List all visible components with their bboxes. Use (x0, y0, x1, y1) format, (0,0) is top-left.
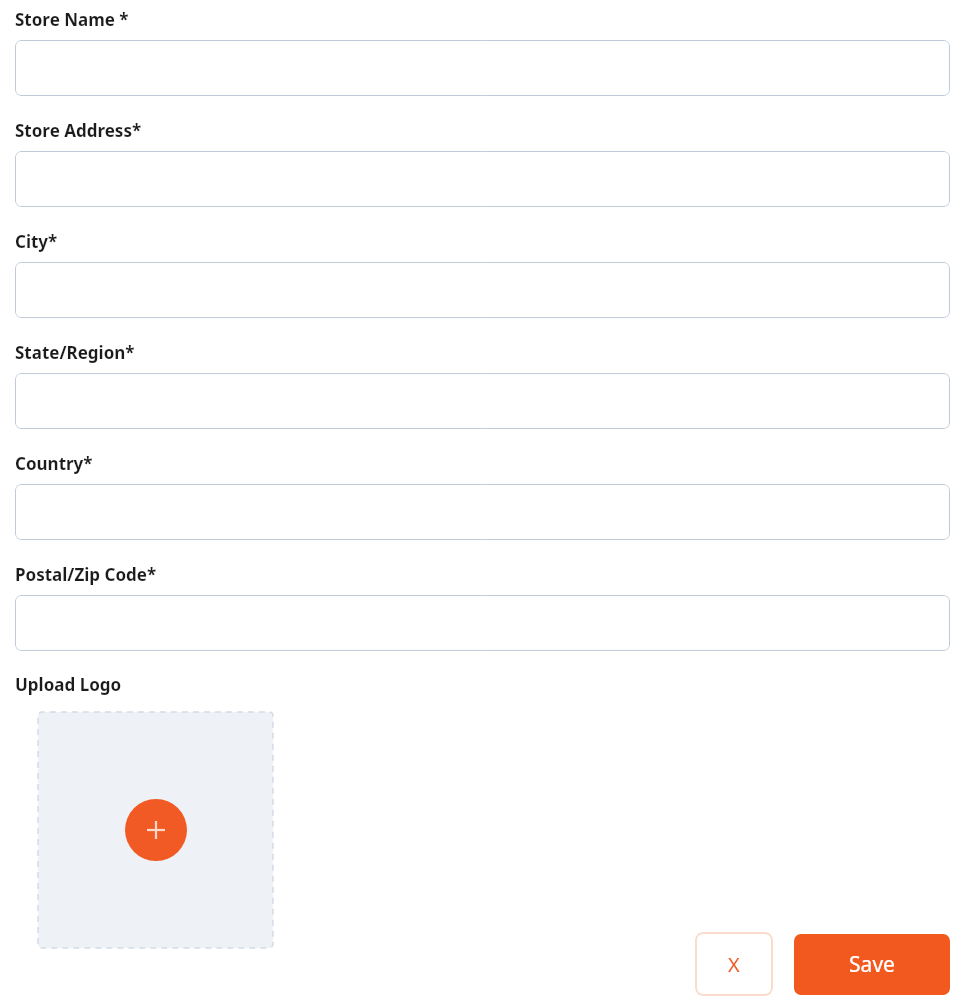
staticText: Store Address* (15, 119, 142, 142)
button[interactable]: Save (794, 934, 950, 995)
button[interactable]: Upload logo (38, 712, 273, 948)
staticText: State/Region* (15, 341, 135, 364)
button[interactable] (15, 373, 950, 429)
button[interactable] (15, 151, 950, 207)
button[interactable] (15, 595, 950, 651)
staticText: City* (15, 230, 58, 253)
staticText: Country* (15, 452, 93, 475)
button[interactable] (15, 40, 950, 96)
staticText: X (728, 951, 740, 978)
staticText: Postal/Zip Code* (15, 563, 157, 586)
staticText: Store Name * (15, 8, 129, 31)
button[interactable]: Cancel (695, 932, 773, 996)
staticText: Save (849, 950, 895, 979)
button[interactable] (15, 262, 950, 318)
staticText: Upload Logo (15, 673, 122, 696)
button[interactable] (15, 484, 950, 540)
